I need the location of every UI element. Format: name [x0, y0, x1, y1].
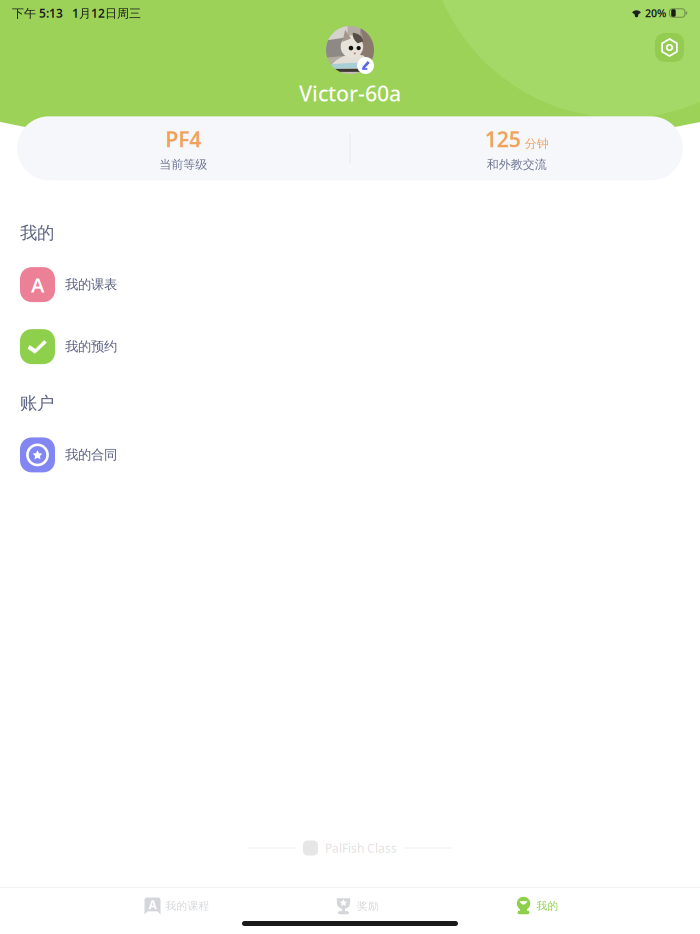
- staticText: A: [148, 896, 156, 912]
- staticText: 我的: [536, 899, 558, 912]
- staticText: Victor-60a: [299, 79, 401, 107]
- button[interactable]: 我的合同: [0, 424, 700, 486]
- staticText: 20%: [642, 6, 669, 20]
- staticText: A: [31, 271, 44, 298]
- button[interactable]: 设置: [655, 33, 684, 62]
- staticText: 分钟: [525, 136, 549, 151]
- staticText: 我的课表: [65, 276, 117, 293]
- button[interactable]: A: [87, 891, 267, 921]
- staticText: 125: [485, 125, 521, 153]
- staticText: 我的预约: [65, 338, 117, 355]
- staticText: 当前等级: [159, 157, 207, 172]
- staticText: 和外教交流: [487, 157, 547, 172]
- button[interactable]: A: [0, 254, 700, 316]
- staticText: 下午 5:13: [12, 5, 63, 21]
- staticText: 我的: [20, 222, 54, 244]
- staticText: 我的合同: [65, 447, 117, 463]
- staticText: 奖励: [357, 899, 379, 912]
- staticText: 账户: [20, 393, 54, 414]
- staticText: PF4: [165, 125, 201, 153]
- staticText: 1月12日周三: [63, 5, 141, 21]
- button[interactable]: 我的: [447, 891, 627, 921]
- staticText: 我的课程: [165, 899, 209, 912]
- button[interactable]: 奖励: [267, 891, 447, 921]
- button[interactable]: 我的预约: [0, 316, 700, 378]
- staticText: PalFish Class: [325, 840, 397, 856]
